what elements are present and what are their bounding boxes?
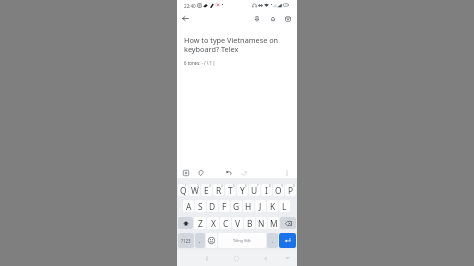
staticText: Tiếng Việt [233, 238, 251, 243]
button[interactable]: E [201, 184, 212, 196]
button[interactable]: A [183, 200, 194, 212]
button[interactable]: Change colour [195, 167, 207, 179]
staticText: 6 [245, 184, 247, 188]
staticText: . [272, 237, 274, 244]
staticText: W [191, 185, 199, 196]
staticText: B [247, 218, 253, 229]
staticText: T [228, 185, 233, 196]
button[interactable]: Pin note [250, 12, 263, 25]
staticText: S [198, 201, 203, 212]
staticText: 1 [185, 184, 187, 188]
button[interactable]: D [207, 200, 218, 212]
button[interactable]: F [219, 200, 230, 212]
button[interactable]: Space [218, 233, 266, 248]
staticText: 2 [197, 184, 199, 188]
staticText: K [270, 201, 276, 212]
button[interactable]: Home [230, 252, 242, 264]
button[interactable]: Backspace [280, 217, 296, 229]
button[interactable]: P [285, 184, 296, 196]
button[interactable]: N [256, 217, 267, 229]
staticText: C [223, 218, 229, 229]
button[interactable]: Enter [279, 233, 296, 248]
button[interactable]: Shift [178, 217, 193, 229]
button[interactable]: L [279, 200, 290, 212]
staticText: V [235, 218, 241, 229]
button[interactable]: Add [180, 167, 192, 179]
button[interactable]: K [267, 200, 278, 212]
button[interactable]: T [225, 184, 236, 196]
staticText: Q [180, 185, 187, 196]
staticText: R [216, 185, 222, 196]
staticText: F [222, 201, 227, 212]
button[interactable]: W [189, 184, 200, 196]
button[interactable]: Archive [281, 12, 294, 25]
staticText: P [288, 185, 294, 196]
staticText: How to type Vietnamese on keyboard? Tele… [184, 35, 293, 54]
staticText: U [251, 185, 258, 196]
staticText: Y [240, 185, 245, 196]
staticText: 3 [209, 184, 211, 188]
button[interactable]: X [207, 217, 219, 229]
staticText: L [282, 201, 287, 212]
button[interactable]: O [273, 184, 284, 196]
button[interactable]: Q [178, 184, 188, 196]
button[interactable]: More options [281, 167, 293, 179]
button[interactable]: Period [267, 233, 278, 248]
button[interactable]: Undo [223, 167, 235, 179]
button[interactable]: C [220, 217, 231, 229]
staticText: N [258, 218, 265, 229]
staticText: , [199, 237, 201, 244]
staticText: X [211, 218, 216, 229]
staticText: E [204, 185, 209, 196]
button[interactable]: I [261, 184, 272, 196]
button[interactable]: Reminder [266, 12, 279, 25]
staticText: I [265, 185, 268, 196]
staticText: 6 tones: - / \ ? | [184, 60, 216, 66]
button[interactable]: Back [179, 12, 192, 25]
button[interactable]: Hide keyboard [281, 252, 293, 264]
button[interactable]: Comma [195, 233, 205, 248]
staticText: G [233, 201, 240, 212]
button[interactable]: Symbols [178, 233, 194, 248]
button[interactable]: Redo [238, 167, 250, 179]
staticText: 8 [269, 184, 271, 188]
staticText: 7 [257, 184, 259, 188]
staticText: 5 [233, 184, 235, 188]
button[interactable]: G [231, 200, 242, 212]
staticText: 22:40 [184, 3, 196, 9]
staticText: D [209, 201, 216, 212]
button[interactable]: B [244, 217, 255, 229]
button[interactable]: Z [194, 217, 206, 229]
button[interactable]: S [195, 200, 206, 212]
button[interactable]: R [213, 184, 224, 196]
button[interactable]: H [243, 200, 254, 212]
staticText: H [245, 201, 252, 212]
staticText: Z [198, 218, 203, 229]
button[interactable]: Emoji [206, 233, 217, 248]
button[interactable]: J [255, 200, 266, 212]
staticText: M [270, 218, 278, 229]
button[interactable]: M [268, 217, 279, 229]
staticText: 9 [281, 184, 283, 188]
button[interactable]: V [232, 217, 243, 229]
staticText: A [186, 201, 192, 212]
staticText: O [275, 185, 282, 196]
staticText: 0 [293, 184, 295, 188]
staticText: 4 [221, 184, 223, 188]
button[interactable]: Recents [201, 252, 213, 264]
staticText: ?123 [181, 238, 191, 244]
button[interactable]: U [249, 184, 260, 196]
button[interactable]: Y [237, 184, 248, 196]
button[interactable]: Back [259, 252, 271, 264]
staticText: J [259, 201, 262, 212]
